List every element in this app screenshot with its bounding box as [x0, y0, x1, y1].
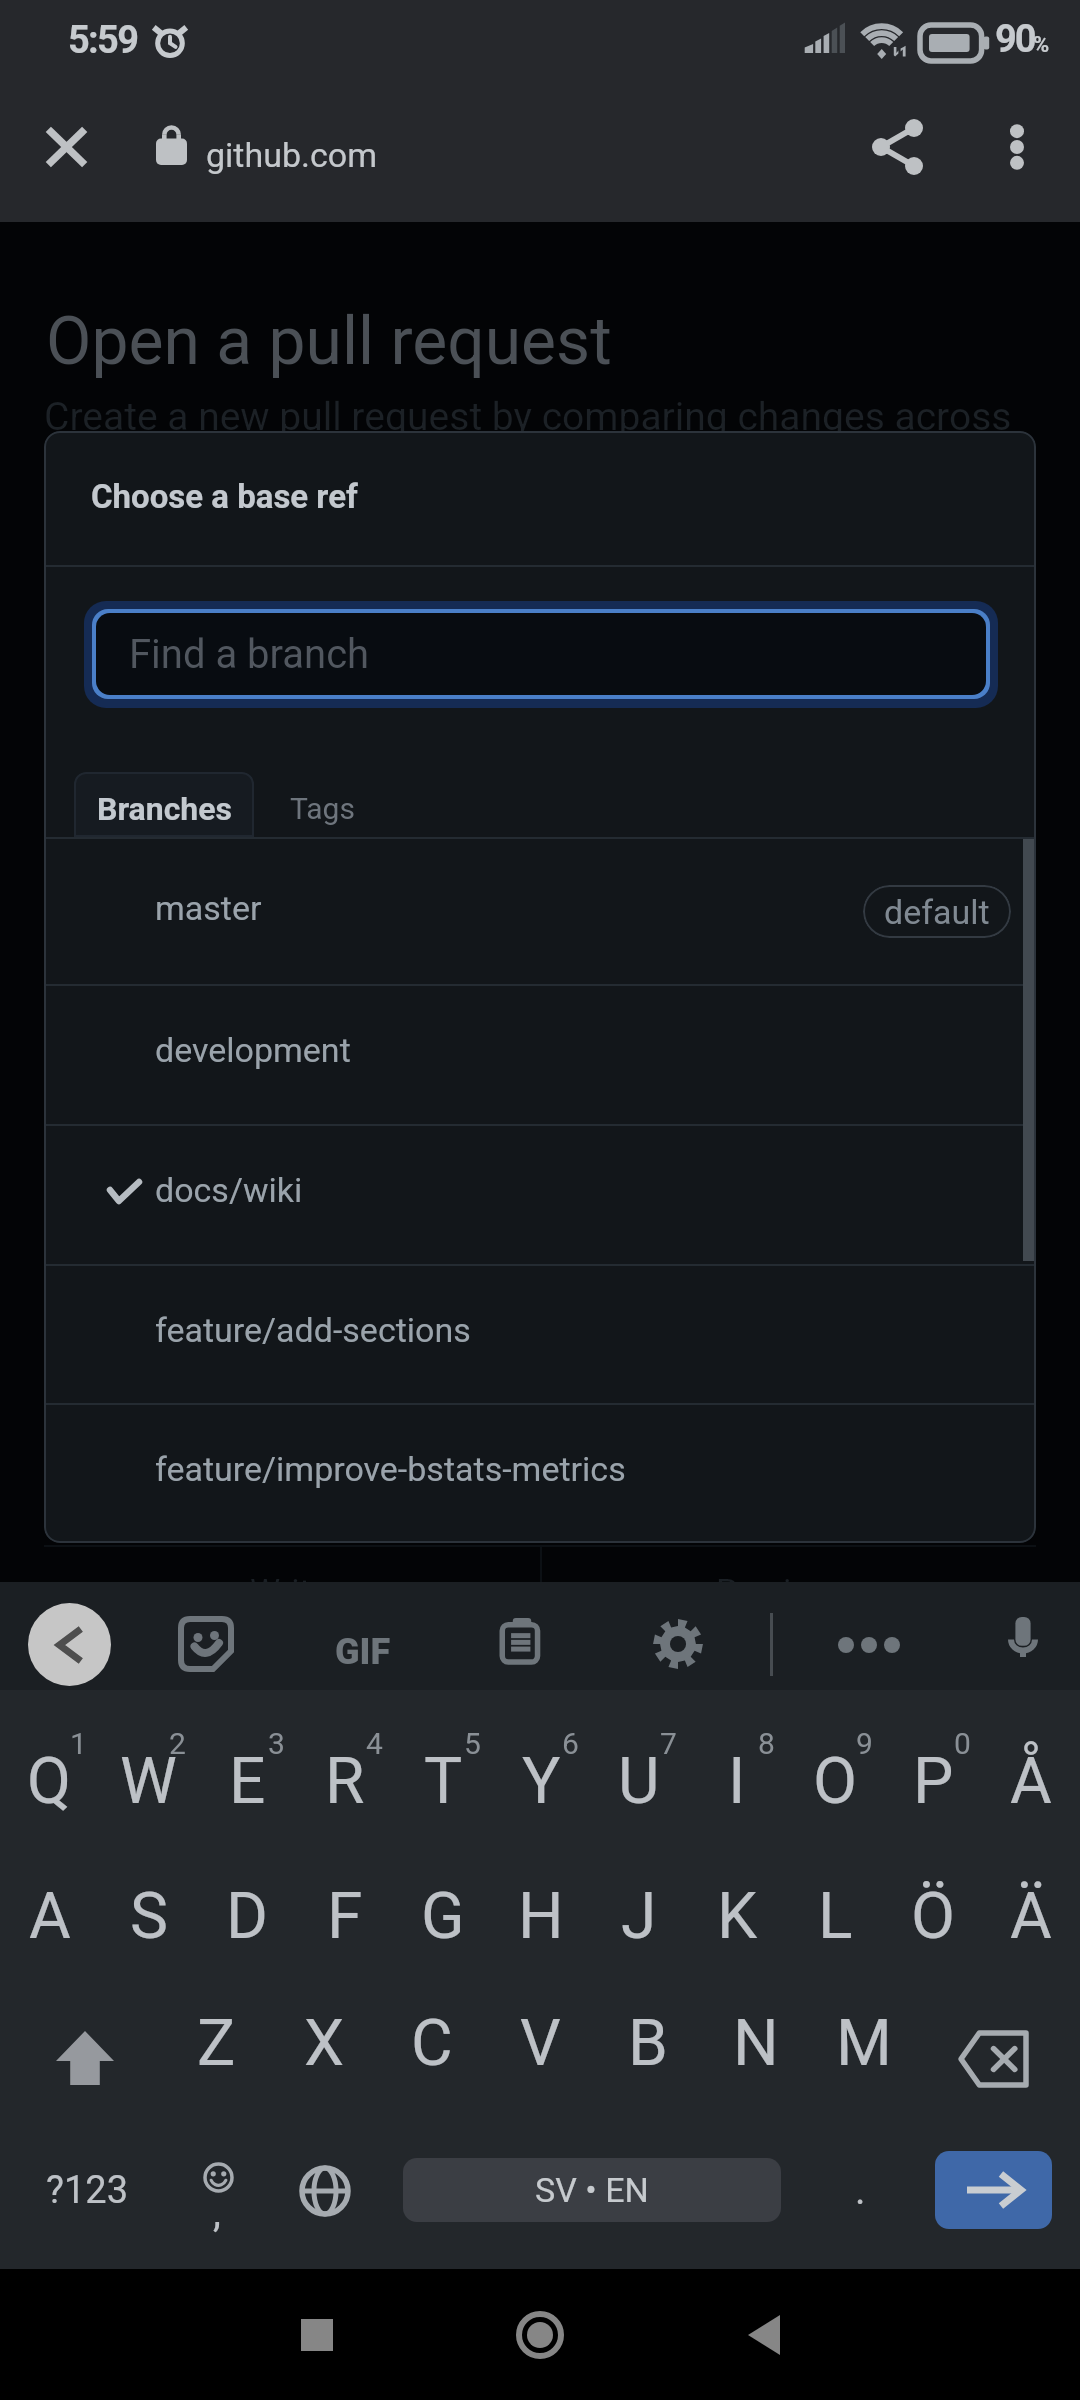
staticText: Choose a base ref [91, 477, 358, 516]
button[interactable]: Q [0, 1716, 99, 1847]
staticText: K [717, 1879, 758, 1954]
button[interactable]: Voice input [983, 1604, 1063, 1684]
staticText: R [325, 1744, 365, 1819]
button[interactable]: Stickers [166, 1604, 246, 1684]
staticText: Open a pull request [46, 303, 612, 380]
button[interactable]: K [688, 1851, 786, 1982]
staticText: 5 [464, 1726, 481, 1761]
button[interactable]: More [819, 1595, 919, 1695]
staticText: , [213, 2189, 221, 2236]
button[interactable]: Ä [982, 1851, 1080, 1982]
staticText: docs/wiki [155, 1170, 303, 1210]
button[interactable]: B [594, 1978, 702, 2109]
staticText: feature/improve-bstats-metrics [155, 1449, 626, 1489]
staticText: Ö [911, 1879, 956, 1954]
staticText: G [421, 1879, 465, 1954]
button[interactable] [84, 601, 998, 708]
staticText: D [226, 1879, 268, 1954]
button[interactable]: Ö [884, 1851, 982, 1982]
button[interactable]: Home [428, 2269, 652, 2400]
button[interactable]: J [590, 1851, 688, 1982]
staticText: 3 [268, 1726, 285, 1761]
button[interactable]: P [884, 1716, 982, 1847]
staticText: F [327, 1879, 363, 1954]
button[interactable]: Backspace [918, 1978, 1080, 2109]
button[interactable]: SV • EN [403, 2158, 781, 2222]
staticText: L [818, 1879, 853, 1954]
button[interactable]: GIF [315, 1604, 411, 1700]
button[interactable]: Back [28, 1603, 111, 1686]
staticText: Y [522, 1744, 561, 1819]
button[interactable]: More options [973, 103, 1061, 191]
button[interactable]: ?123 [0, 2125, 175, 2256]
staticText: development [155, 1030, 351, 1070]
staticText: SV • EN [535, 2170, 649, 2210]
button[interactable]: Emoji [175, 2125, 275, 2256]
staticText: GIF [335, 1631, 391, 1673]
staticText: V [520, 2006, 561, 2081]
button[interactable]: Recent apps [205, 2269, 429, 2400]
button[interactable]: V [486, 1978, 594, 2109]
staticText: I [728, 1744, 746, 1819]
button[interactable]: Tags [252, 772, 392, 837]
button[interactable]: Clipboard [482, 1604, 562, 1684]
staticText: P [913, 1744, 954, 1819]
staticText: B [628, 2006, 668, 2081]
button[interactable]: feature/add-sections [44, 1264, 1036, 1403]
button[interactable]: Settings [638, 1604, 718, 1684]
button[interactable]: W [99, 1716, 198, 1847]
staticText: 0 [954, 1726, 971, 1761]
button[interactable]: A [0, 1851, 99, 1982]
button[interactable]: C [378, 1978, 486, 2109]
button[interactable]: Back [652, 2269, 876, 2400]
button[interactable]: S [99, 1851, 198, 1982]
button[interactable]: D [198, 1851, 296, 1982]
button[interactable]: docs/wiki [44, 1124, 1036, 1264]
button[interactable]: T [394, 1716, 492, 1847]
staticText: T [424, 1744, 463, 1819]
staticText: 7 [660, 1726, 677, 1761]
button[interactable]: U [590, 1716, 688, 1847]
button[interactable]: G [394, 1851, 492, 1982]
button[interactable]: X [270, 1978, 378, 2109]
button[interactable]: M [810, 1978, 918, 2109]
button[interactable]: Close [22, 103, 110, 191]
button[interactable]: Z [162, 1978, 270, 2109]
staticText: Q [27, 1744, 72, 1819]
staticText: N [733, 2006, 779, 2081]
button[interactable]: Share [853, 103, 941, 191]
staticText: S [130, 1879, 168, 1954]
button[interactable]: . [812, 2125, 908, 2256]
staticText: Tags [290, 791, 355, 826]
button[interactable]: Branches [74, 772, 254, 837]
button[interactable]: Shift [0, 1978, 162, 2109]
staticText: 9 [856, 1726, 873, 1761]
button[interactable]: I [688, 1716, 786, 1847]
button[interactable]: Enter [935, 2151, 1052, 2229]
staticText: Å [1010, 1744, 1052, 1819]
button[interactable]: master [44, 839, 1036, 984]
staticText: master [155, 888, 262, 928]
button[interactable]: H [492, 1851, 590, 1982]
staticText: C [411, 2006, 453, 2081]
button[interactable]: Y [492, 1716, 590, 1847]
staticText: O [813, 1744, 858, 1819]
staticText: github.com [206, 135, 378, 175]
staticText: 8 [758, 1726, 775, 1761]
button[interactable]: Å [982, 1716, 1080, 1847]
button[interactable]: development [44, 984, 1036, 1124]
staticText: % [1033, 32, 1050, 58]
staticText: W [120, 1744, 177, 1819]
staticText: . [855, 2167, 866, 2214]
button[interactable]: feature/improve-bstats-metrics [44, 1403, 1036, 1543]
button[interactable]: F [296, 1851, 394, 1982]
button[interactable]: R [296, 1716, 394, 1847]
staticText: 6 [562, 1726, 579, 1761]
button[interactable]: L [786, 1851, 884, 1982]
button[interactable]: Change language [275, 2125, 375, 2256]
staticText: Z [197, 2006, 236, 2081]
button[interactable]: E [198, 1716, 296, 1847]
button[interactable]: O [786, 1716, 884, 1847]
button[interactable]: N [702, 1978, 810, 2109]
staticText: Branches [97, 790, 232, 828]
